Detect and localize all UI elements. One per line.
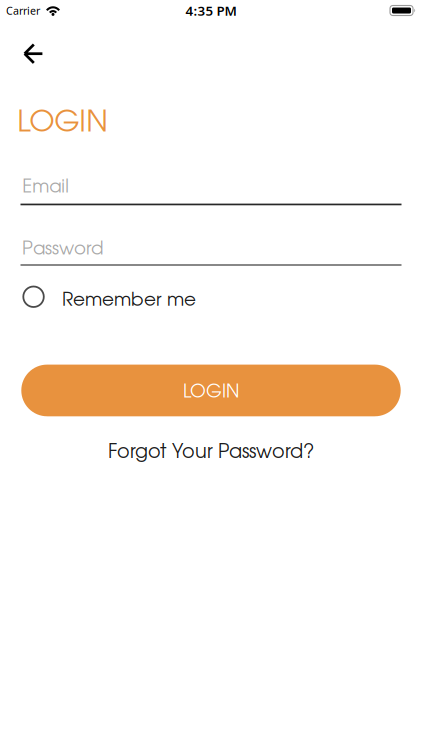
button[interactable]: LOGIN <box>21 365 401 416</box>
button[interactable]: Password <box>0 0 401 266</box>
staticText: Carrier <box>6 3 40 18</box>
button[interactable]: Remember me <box>0 0 196 309</box>
staticText: Remember me <box>62 292 196 309</box>
staticText: Email <box>22 179 69 196</box>
staticText: LOGIN <box>17 110 108 137</box>
staticText: LOGIN <box>183 384 239 401</box>
staticText: Password <box>22 241 104 258</box>
button[interactable]: Forgot Your Password? <box>108 444 314 462</box>
button[interactable]: Email <box>0 0 401 205</box>
staticText: Forgot Your Password? <box>108 444 314 462</box>
staticText: 4:35 PM <box>185 2 236 19</box>
button[interactable]: Back <box>0 0 58 76</box>
